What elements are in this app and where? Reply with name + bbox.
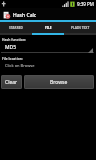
button[interactable]: MD5 <box>0 44 96 54</box>
staticText: STARRED <box>9 26 23 30</box>
staticText: FILE <box>45 26 52 30</box>
button[interactable]: PLAIN TEXT <box>64 22 96 35</box>
staticText: PLAIN TEXT <box>71 26 90 30</box>
staticText: Clear <box>5 79 18 86</box>
button[interactable]: Browse <box>24 75 94 89</box>
staticText: File location: <box>2 56 23 60</box>
staticText: 9:39 PM <box>77 1 94 7</box>
staticText: Click on Browse <box>5 63 35 68</box>
button[interactable]: FILE <box>32 22 64 35</box>
staticText: Hash Calc <box>13 12 37 19</box>
staticText: Browse <box>50 79 68 86</box>
staticText: MD5 <box>5 44 17 51</box>
staticText: Hash function: <box>2 37 26 41</box>
button[interactable]: STARRED <box>0 22 32 35</box>
button[interactable]: Clear <box>1 75 22 89</box>
